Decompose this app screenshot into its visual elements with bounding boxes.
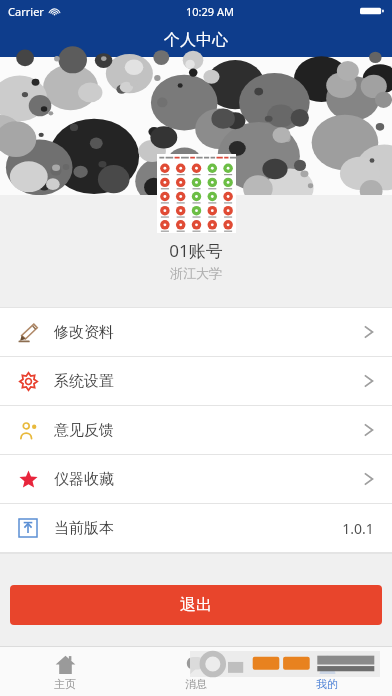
staticText: 个人中心 — [164, 30, 228, 50]
staticText: 系统设置 — [54, 372, 114, 391]
other: 我的 — [317, 654, 338, 675]
staticText: 意见反馈 — [54, 421, 114, 440]
staticText: 消息 — [185, 677, 207, 691]
button[interactable]: 系统设置 — [0, 357, 392, 405]
staticText: 修改资料 — [54, 323, 114, 342]
button[interactable]: 退出 — [10, 585, 382, 625]
button[interactable]: 意见反馈 — [0, 406, 392, 454]
other: 主页 — [55, 654, 76, 675]
staticText: 当前版本 — [54, 519, 114, 538]
staticText: Carrier — [8, 4, 44, 19]
staticText: 主页 — [54, 677, 76, 691]
button[interactable]: 消息 — [130, 647, 261, 696]
staticText: 01账号 — [169, 239, 223, 262]
staticText: 10:29 AM — [186, 4, 234, 19]
other: 消息 — [186, 654, 207, 675]
button[interactable]: 我的 — [261, 647, 392, 696]
button[interactable]: 主页 — [0, 647, 130, 696]
button[interactable]: 当前版本 — [0, 504, 392, 552]
staticText: 退出 — [180, 595, 212, 615]
button[interactable]: 修改资料 — [0, 308, 392, 356]
staticText: 我的 — [316, 677, 338, 691]
staticText: 浙江大学 — [170, 265, 222, 281]
staticText: 仪器收藏 — [54, 470, 114, 489]
button[interactable]: 仪器收藏 — [0, 455, 392, 503]
staticText: 1.0.1 — [342, 519, 374, 538]
